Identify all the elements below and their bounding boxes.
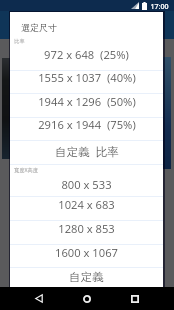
button[interactable]: 1555 x 1037 (40%)	[10, 70, 163, 93]
button[interactable]: 1944 x 1296 (50%)	[10, 93, 163, 117]
button[interactable]: 2916 x 1944 (75%)	[10, 117, 163, 140]
button[interactable]: 1280 x 853	[10, 220, 163, 244]
staticText: 1280 x 853	[58, 221, 115, 236]
staticText: 自定義	[69, 270, 104, 284]
button[interactable]: 800 x 533	[10, 175, 163, 196]
staticText: 1944 x 1296 (50%)	[38, 94, 136, 109]
staticText: 2916 x 1944 (75%)	[38, 117, 136, 132]
staticText: 1024 x 683	[58, 197, 115, 212]
button[interactable]: 1600 x 1067	[10, 244, 163, 267]
staticText: 972 x 648 (25%)	[44, 47, 129, 62]
button[interactable]: Recents	[123, 287, 147, 310]
staticText: 選定尺寸	[21, 22, 57, 33]
button[interactable]: 自定義 比率	[10, 140, 163, 164]
staticText: 1555 x 1037 (40%)	[38, 70, 136, 85]
staticText: 17:00	[150, 1, 169, 11]
staticText: 自定義 比率	[55, 144, 119, 160]
button[interactable]: Home	[75, 287, 99, 310]
staticText: 寬度X高度	[14, 166, 38, 173]
button[interactable]: 1024 x 683	[10, 196, 163, 220]
button[interactable]: Back	[27, 287, 51, 310]
staticText: 800 x 533	[61, 177, 112, 192]
staticText: 1600 x 1067	[55, 245, 118, 260]
button[interactable]: 972 x 648 (25%)	[10, 47, 163, 71]
staticText: 比率	[14, 38, 25, 45]
button[interactable]: 自定義	[10, 267, 163, 287]
